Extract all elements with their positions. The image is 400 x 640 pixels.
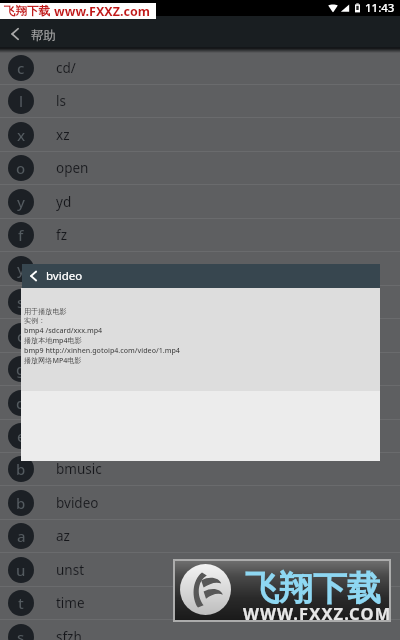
staticText: c (17, 326, 25, 346)
staticText: e (17, 426, 26, 446)
staticText: c (17, 58, 25, 78)
button[interactable]: t (0, 587, 400, 620)
other: Back (25, 264, 41, 288)
staticText: o (16, 158, 26, 178)
staticText: bvideo (46, 268, 83, 284)
staticText: fz (56, 226, 67, 244)
staticText: d (16, 393, 26, 413)
button[interactable]: g (0, 353, 400, 386)
staticText: 播放本地mp4电影 (24, 335, 82, 345)
staticText: sz (56, 293, 69, 311)
staticText: b (16, 493, 26, 513)
staticText: yd (56, 193, 72, 211)
staticText: bmp9 http://xinhen.gotoip4.com/video/1.m… (24, 345, 180, 355)
staticText: az (56, 527, 70, 545)
staticText: x (17, 125, 26, 145)
staticText: y (17, 192, 25, 212)
button[interactable]: x (0, 119, 400, 152)
staticText: u (16, 560, 26, 580)
button[interactable]: Back (22, 264, 380, 288)
button[interactable]: l (0, 85, 400, 118)
button[interactable]: y (0, 253, 400, 286)
staticText: 飞翔下载 (4, 4, 50, 18)
staticText: 11:43 (365, 0, 395, 16)
button[interactable]: f (0, 219, 400, 252)
staticText: 实例： (24, 316, 46, 325)
staticText: cd/ (56, 59, 76, 77)
staticText: l (19, 91, 24, 111)
staticText: 用于播放电影 (24, 307, 67, 316)
staticText: s (17, 292, 25, 312)
button[interactable]: c (0, 52, 400, 85)
button[interactable]: s (0, 286, 400, 319)
button[interactable]: a (0, 520, 400, 553)
staticText: t (18, 593, 24, 613)
staticText: bmp4 /sdcard/xxx.mp4 (24, 325, 103, 335)
staticText: g (16, 359, 26, 379)
staticText: 帮助 (31, 28, 56, 44)
staticText: a (17, 526, 26, 546)
staticText: y (17, 259, 25, 279)
staticText: xz (56, 126, 70, 144)
button[interactable]: y (0, 186, 400, 219)
staticText: open (56, 159, 89, 177)
staticText: gz (56, 360, 71, 378)
staticText: ys (56, 260, 70, 278)
staticText: unst (56, 561, 85, 579)
button[interactable]: d (0, 387, 400, 420)
button[interactable]: u (0, 554, 400, 587)
button[interactable]: b (0, 487, 400, 520)
staticText: cz (56, 327, 69, 345)
staticText: ls (56, 92, 66, 110)
staticText: bvideo (56, 494, 99, 512)
staticText: bmusic (56, 460, 102, 478)
button[interactable]: Back (2, 19, 28, 49)
button[interactable]: e (0, 420, 400, 453)
staticText: WWW.FXXZ.COM (243, 602, 392, 624)
staticText: 播放网络MP4电影 (24, 355, 82, 365)
staticText: f (18, 225, 24, 245)
button[interactable]: b (0, 453, 400, 486)
button[interactable]: c (0, 320, 400, 353)
staticText: time (56, 594, 85, 612)
staticText: sfzh (56, 628, 82, 640)
button[interactable]: o (0, 152, 400, 185)
staticText: www.FXXZ.com (54, 3, 150, 19)
staticText: b (16, 459, 26, 479)
button[interactable]: s (0, 621, 400, 640)
staticText: s (17, 627, 25, 640)
staticText: 飞翔下载 (245, 567, 381, 610)
